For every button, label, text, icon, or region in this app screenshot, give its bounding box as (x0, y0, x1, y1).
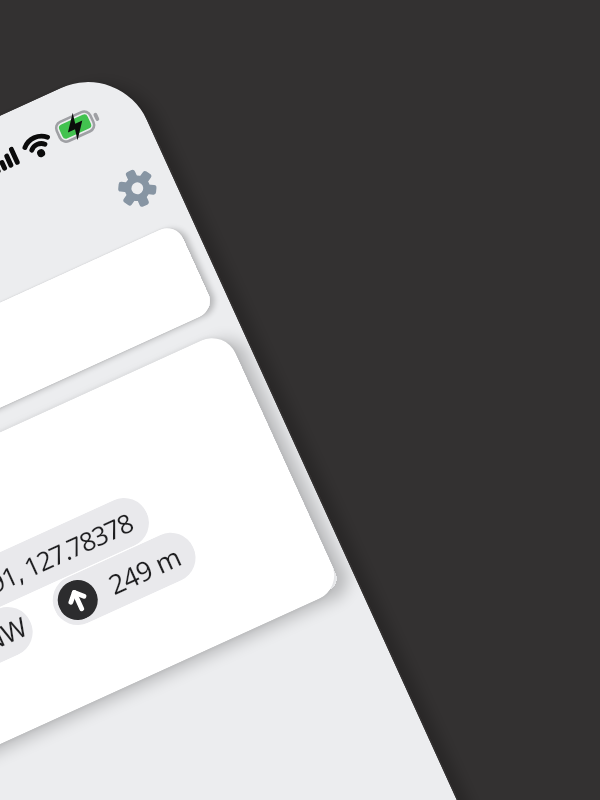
button[interactable] (0, 222, 216, 639)
staticText: NW (0, 608, 33, 660)
button[interactable]: 249 m (45, 525, 204, 633)
button[interactable]: NW (0, 599, 41, 690)
button[interactable]: 36.45291, 127.78378 (0, 490, 157, 685)
button[interactable] (112, 163, 162, 213)
staticText: 249 m (102, 538, 187, 603)
staticText: 36.45291, 127.78378 (0, 505, 138, 631)
